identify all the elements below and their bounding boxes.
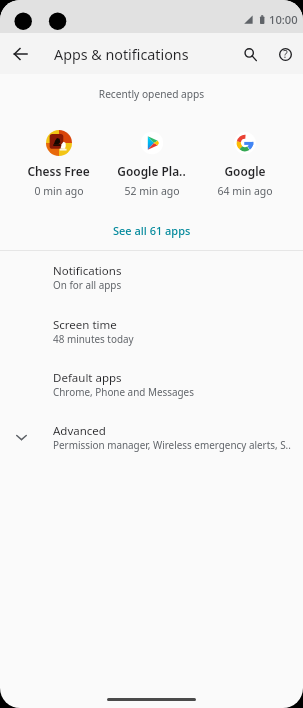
staticText: ? <box>283 46 288 61</box>
staticText: 0 min ago <box>34 184 84 198</box>
staticText: See all 61 apps <box>113 223 191 238</box>
button[interactable]: Chess Free <box>12 130 105 198</box>
staticText: Apps & notifications <box>54 45 189 64</box>
staticText: Screen time <box>53 317 117 333</box>
button[interactable]: Help <box>271 40 299 68</box>
button[interactable]: Screen time <box>0 305 303 358</box>
staticText: Permission manager, Wireless emergency a… <box>53 438 291 451</box>
staticText: On for all apps <box>53 278 122 291</box>
staticText: Advanced <box>53 423 106 439</box>
staticText: Notifications <box>53 263 122 279</box>
button[interactable]: Back <box>6 39 35 68</box>
staticText: 64 min ago <box>217 184 273 198</box>
staticText: 10:00 <box>269 12 298 27</box>
button[interactable]: Search <box>236 40 264 68</box>
staticText: 52 min ago <box>124 184 180 198</box>
staticText: Chess Free <box>27 163 90 179</box>
staticText: Recently opened apps <box>0 87 303 101</box>
staticText: Google <box>224 163 266 179</box>
button[interactable]: Notifications <box>0 251 303 305</box>
staticText: Google Pla.. <box>117 163 186 179</box>
staticText: 48 minutes today <box>53 332 134 345</box>
button[interactable]: See all 61 apps <box>0 216 303 244</box>
staticText: Chrome, Phone and Messages <box>53 385 194 398</box>
button[interactable]: Default apps <box>0 358 303 411</box>
button[interactable]: Google Pla.. <box>105 130 198 198</box>
button[interactable]: Google <box>198 130 291 198</box>
button[interactable]: Advanced <box>0 411 303 464</box>
staticText: Default apps <box>53 370 122 386</box>
